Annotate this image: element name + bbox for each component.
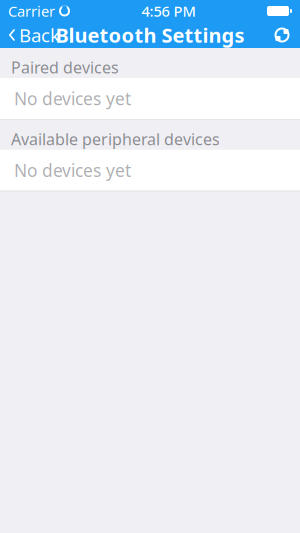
button[interactable]: Refresh xyxy=(274,22,300,48)
staticText: No devices yet xyxy=(14,87,131,110)
staticText: Available peripheral devices xyxy=(11,128,220,150)
staticText: No devices yet xyxy=(14,159,131,182)
button[interactable]: Back xyxy=(0,22,60,48)
staticText: Carrier xyxy=(8,1,55,21)
staticText: Paired devices xyxy=(11,57,119,78)
staticText: Back xyxy=(19,23,60,47)
staticText: 4:56 PM xyxy=(141,1,195,21)
staticText: Bluetooth Settings xyxy=(55,22,244,48)
